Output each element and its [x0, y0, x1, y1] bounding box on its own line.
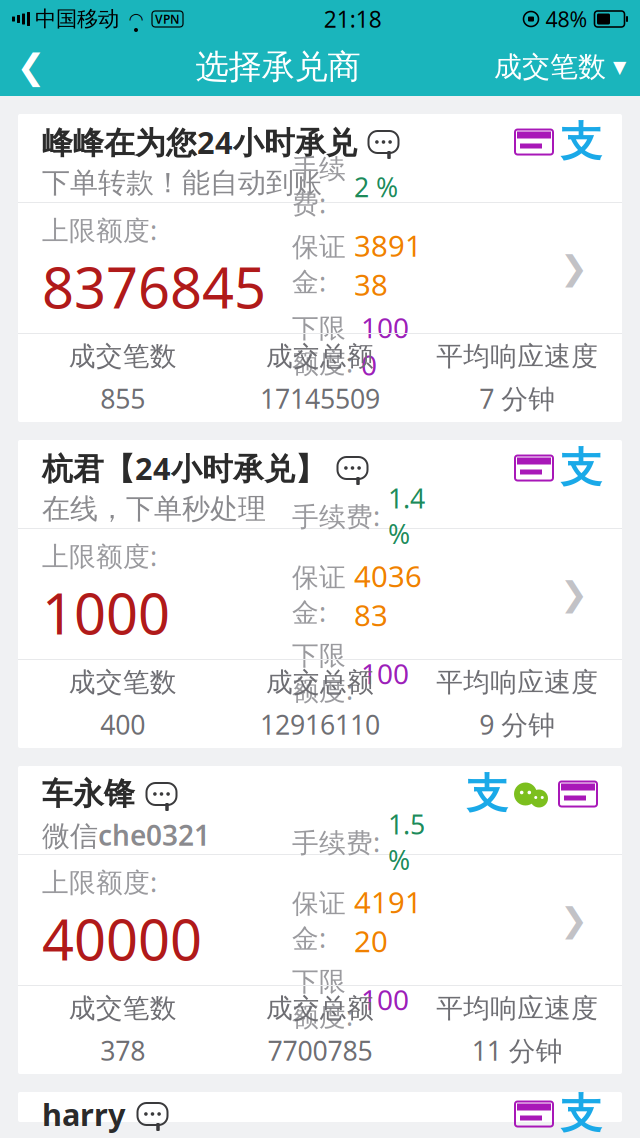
staticText: harry	[42, 1094, 126, 1134]
staticText: 403683	[354, 556, 422, 634]
staticText: 12916110	[260, 707, 380, 742]
staticText: 成交笔数	[494, 50, 606, 84]
staticText: 手续费:	[292, 498, 380, 534]
staticText: 400	[100, 707, 145, 742]
staticText: 7700785	[267, 1033, 372, 1068]
staticText: 微信che0321	[42, 816, 210, 854]
staticText: 中国移动	[35, 6, 119, 32]
staticText: 378	[100, 1033, 145, 1068]
staticText: 1.4 %	[388, 480, 425, 551]
staticText: 下限额度:	[292, 965, 353, 1033]
button[interactable]: 峰峰在为您24小时承兑	[18, 114, 622, 422]
staticText: 车永锋	[42, 775, 135, 813]
staticText: ◠	[129, 9, 142, 29]
button[interactable]: 杭君【24小时承兑】	[18, 440, 622, 748]
staticText: 389138	[354, 226, 422, 304]
staticText: 上限额度:	[42, 538, 157, 573]
staticText: 上限额度:	[42, 212, 157, 247]
staticText: ❯	[560, 249, 588, 287]
staticText: 上限额度:	[42, 864, 157, 899]
staticText: 成交笔数	[69, 666, 177, 699]
button[interactable]: 车永锋	[18, 766, 622, 1074]
staticText: 杭君【24小时承兑】	[42, 448, 326, 488]
staticText: 平均响应速度	[436, 992, 598, 1025]
staticText: ▼	[613, 57, 626, 77]
staticText: ❯	[560, 901, 588, 939]
staticText: ❮	[16, 47, 45, 87]
staticText: 手续费:	[292, 153, 346, 221]
staticText: 9 分钟	[479, 707, 555, 742]
staticText: 平均响应速度	[436, 340, 598, 373]
staticText: 1000	[361, 309, 409, 383]
staticText: 选择承兑商	[195, 46, 360, 87]
staticText: 100	[361, 655, 409, 692]
staticText: 保证金:	[292, 887, 346, 955]
staticText: 手续费:	[292, 824, 380, 860]
staticText: 100	[361, 981, 409, 1018]
staticText: 下限额度:	[292, 639, 353, 707]
staticText: 支	[560, 443, 601, 493]
staticText: 40000	[42, 901, 202, 976]
staticText: 下限额度:	[292, 312, 353, 380]
staticText: 11 分钟	[472, 1033, 563, 1068]
staticText: 成交总额	[266, 992, 374, 1025]
staticText: 保证金:	[292, 231, 346, 299]
staticText: 成交笔数	[69, 992, 177, 1025]
staticText: 下单转款！能自动到账	[42, 166, 322, 200]
staticText: 支	[466, 769, 507, 819]
staticText: 支	[560, 117, 601, 167]
staticText: 在线，下单秒处理	[42, 492, 266, 526]
staticText: 419120	[354, 882, 422, 960]
staticText: VPN	[155, 11, 180, 27]
staticText: 峰峰在为您24小时承兑	[42, 122, 357, 162]
staticText: 保证金:	[292, 561, 346, 629]
button[interactable]: Back	[0, 38, 62, 96]
staticText: 855	[100, 381, 145, 416]
staticText: 成交总额	[266, 340, 374, 373]
staticText: ❯	[560, 575, 588, 613]
staticText: 1.5 %	[388, 806, 425, 877]
staticText: 成交总额	[266, 666, 374, 699]
staticText: 2 %	[354, 169, 398, 205]
staticText: 8376845	[42, 249, 266, 324]
button[interactable]: 成交笔数	[494, 38, 640, 96]
staticText: 21:18	[324, 4, 382, 34]
staticText: 48%	[545, 5, 587, 33]
staticText: 7 分钟	[479, 381, 555, 416]
staticText: 平均响应速度	[436, 666, 598, 699]
staticText: 成交笔数	[69, 340, 177, 373]
staticText: 17145509	[260, 381, 380, 416]
staticText: 1000	[42, 575, 170, 650]
staticText: 支	[560, 1089, 601, 1138]
